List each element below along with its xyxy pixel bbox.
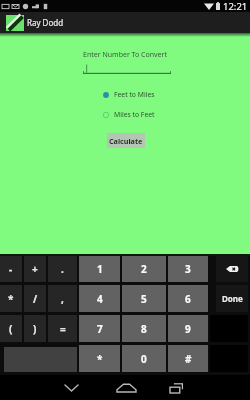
button[interactable]: - — [0, 256, 22, 282]
staticText: - — [9, 262, 13, 276]
button[interactable]: Done — [216, 285, 248, 312]
button[interactable]: 5 — [122, 285, 166, 312]
staticText: 3 — [185, 262, 191, 276]
button[interactable]: ) — [24, 315, 46, 342]
button[interactable]: * — [0, 285, 22, 312]
button[interactable]: 8 — [122, 315, 166, 342]
button[interactable]: . — [48, 256, 77, 282]
button[interactable]: Home — [108, 377, 144, 398]
button[interactable]: 3 — [168, 256, 208, 282]
staticText: / — [33, 292, 38, 306]
staticText: . — [61, 262, 64, 276]
button[interactable]: # — [168, 345, 208, 372]
button[interactable]: 2 — [122, 256, 166, 282]
staticText: 7 — [97, 322, 103, 336]
button[interactable]: / — [24, 285, 46, 312]
staticText: Feet to Miles — [114, 90, 155, 99]
staticText: 6 — [185, 292, 191, 306]
button[interactable]: Calculate — [107, 133, 145, 148]
staticText: ) — [33, 322, 37, 336]
staticText: # — [185, 352, 192, 366]
staticText: = — [60, 322, 66, 336]
staticText: Enter Number To Convert — [83, 50, 167, 60]
staticText: * — [97, 352, 103, 366]
staticText: 0 — [141, 352, 147, 366]
button[interactable] — [83, 63, 171, 74]
button[interactable]: 7 — [79, 315, 120, 342]
other: Delete — [226, 266, 239, 272]
staticText: * — [8, 292, 14, 306]
button[interactable]: + — [24, 256, 46, 282]
button[interactable]: , — [48, 285, 77, 312]
button[interactable]: * — [79, 345, 120, 372]
button[interactable]: Miles to Feet — [102, 110, 155, 119]
staticText: 2 — [141, 262, 147, 276]
staticText: 4 — [97, 292, 103, 306]
staticText: + — [32, 262, 38, 276]
button[interactable]: Feet to Miles — [102, 90, 155, 99]
staticText: Calculate — [109, 136, 143, 146]
button[interactable]: Recent apps — [158, 377, 194, 398]
button[interactable]: 9 — [168, 315, 208, 342]
staticText: Miles to Feet — [114, 110, 155, 119]
button[interactable]: Delete — [216, 256, 248, 282]
staticText: 12:21 — [223, 0, 248, 12]
staticText: , — [61, 292, 64, 306]
button[interactable]: Hide keyboard — [53, 377, 89, 398]
staticText: Done — [222, 293, 243, 304]
button[interactable]: 4 — [79, 285, 120, 312]
button[interactable]: ( — [0, 315, 22, 342]
button[interactable]: 6 — [168, 285, 208, 312]
staticText: 5 — [141, 292, 147, 306]
staticText: 9 — [185, 322, 191, 336]
button[interactable]: 0 — [122, 345, 166, 372]
staticText: 1 — [97, 262, 103, 276]
staticText: ( — [9, 322, 13, 336]
button[interactable]: 1 — [79, 256, 120, 282]
staticText: 8 — [141, 322, 147, 336]
button[interactable]: = — [48, 315, 77, 342]
staticText: Ray Dodd — [27, 17, 64, 28]
